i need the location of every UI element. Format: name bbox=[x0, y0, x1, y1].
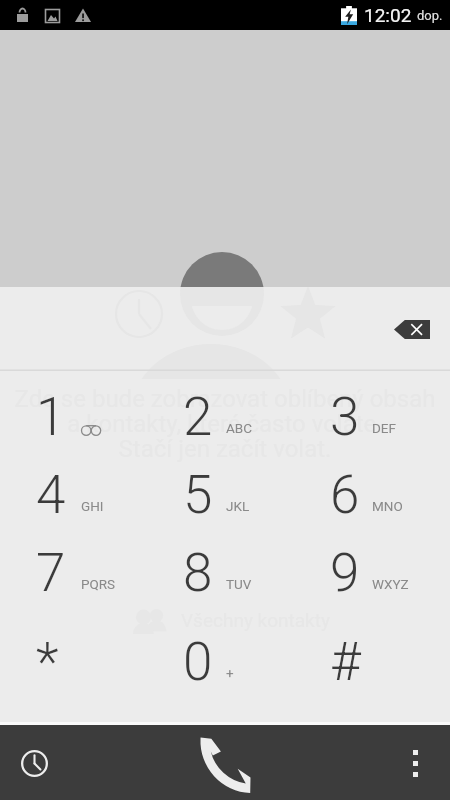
staticText: JKL bbox=[226, 498, 250, 514]
button[interactable]: Dial pad bbox=[160, 725, 290, 800]
staticText: WXYZ bbox=[372, 576, 409, 592]
staticText: 4 bbox=[36, 464, 66, 526]
staticText: TUV bbox=[226, 576, 252, 592]
staticText: 12:02 bbox=[364, 4, 412, 26]
button[interactable]: 0 bbox=[150, 615, 300, 693]
staticText: 8 bbox=[183, 542, 213, 604]
button[interactable]: 9 bbox=[300, 533, 450, 611]
staticText: 1 bbox=[36, 386, 66, 448]
button[interactable]: 7 bbox=[0, 533, 150, 611]
staticText: MNO bbox=[372, 498, 403, 514]
button[interactable]: 5 bbox=[150, 455, 300, 533]
button[interactable]: Backspace bbox=[390, 307, 434, 351]
button[interactable]: # bbox=[300, 615, 450, 693]
button[interactable]: More options bbox=[381, 725, 450, 800]
button[interactable]: 2 bbox=[150, 377, 300, 455]
staticText: ABC bbox=[226, 420, 253, 436]
staticText: 3 bbox=[330, 386, 360, 448]
button[interactable]: * bbox=[0, 615, 150, 693]
staticText: PQRS bbox=[81, 576, 116, 592]
button[interactable]: 6 bbox=[300, 455, 450, 533]
staticText: Zde se bude zobrazovat oblíbený obsah a … bbox=[0, 385, 450, 463]
staticText: 7 bbox=[36, 542, 66, 604]
staticText: # bbox=[330, 631, 361, 693]
staticText: 0 bbox=[183, 631, 213, 693]
staticText: DEF bbox=[372, 420, 396, 436]
button[interactable]: 8 bbox=[150, 533, 300, 611]
button[interactable]: Recent calls bbox=[0, 725, 69, 800]
staticText: GHI bbox=[81, 498, 104, 514]
staticText: 6 bbox=[330, 464, 360, 526]
button[interactable]: 1 bbox=[0, 377, 150, 455]
button[interactable]: 3 bbox=[300, 377, 450, 455]
staticText: + bbox=[226, 665, 234, 681]
staticText: 2 bbox=[183, 386, 213, 448]
staticText: 9 bbox=[330, 542, 360, 604]
staticText: dop. bbox=[417, 8, 443, 23]
staticText: * bbox=[36, 631, 59, 693]
button[interactable]: 4 bbox=[0, 455, 150, 533]
staticText: 5 bbox=[183, 464, 213, 526]
